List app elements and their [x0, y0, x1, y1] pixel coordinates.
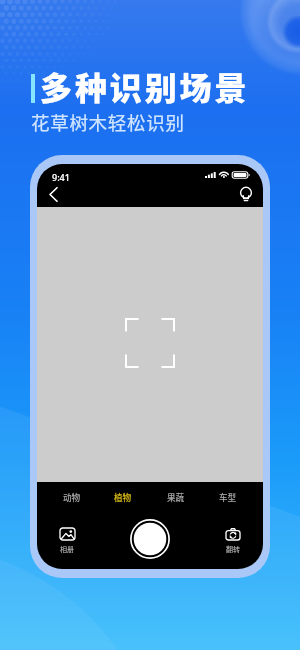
button[interactable]: Take photo: [130, 519, 170, 559]
staticText: 植物: [114, 491, 132, 503]
staticText: 花草树木轻松识别: [31, 109, 185, 136]
button[interactable]: Back: [41, 182, 66, 207]
staticText: 翻转: [226, 544, 240, 554]
button[interactable]: 翻转: [216, 528, 250, 554]
staticText: 9:41: [52, 171, 70, 183]
button[interactable]: 果蔬: [162, 486, 190, 508]
staticText: 动物: [63, 491, 81, 503]
button[interactable]: 车型: [214, 486, 242, 508]
staticText: 果蔬: [167, 491, 185, 503]
button[interactable]: 相册: [50, 528, 84, 554]
button[interactable]: 植物: [109, 486, 137, 508]
staticText: 多种识别场景: [40, 63, 250, 109]
staticText: 相册: [60, 544, 74, 554]
staticText: 车型: [219, 491, 237, 503]
button[interactable]: Flashlight: [235, 186, 257, 208]
button[interactable]: 动物: [58, 486, 86, 508]
